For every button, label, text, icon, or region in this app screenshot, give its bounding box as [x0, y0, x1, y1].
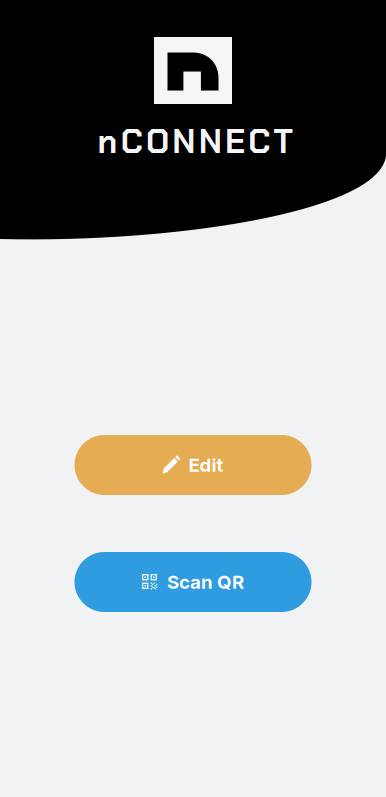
staticText: nCONNECT — [97, 120, 293, 163]
staticText: Scan QR — [167, 571, 244, 593]
staticText: Edit — [188, 454, 223, 476]
button[interactable]: Edit — [74, 435, 311, 495]
button[interactable]: Scan QR — [74, 552, 311, 612]
